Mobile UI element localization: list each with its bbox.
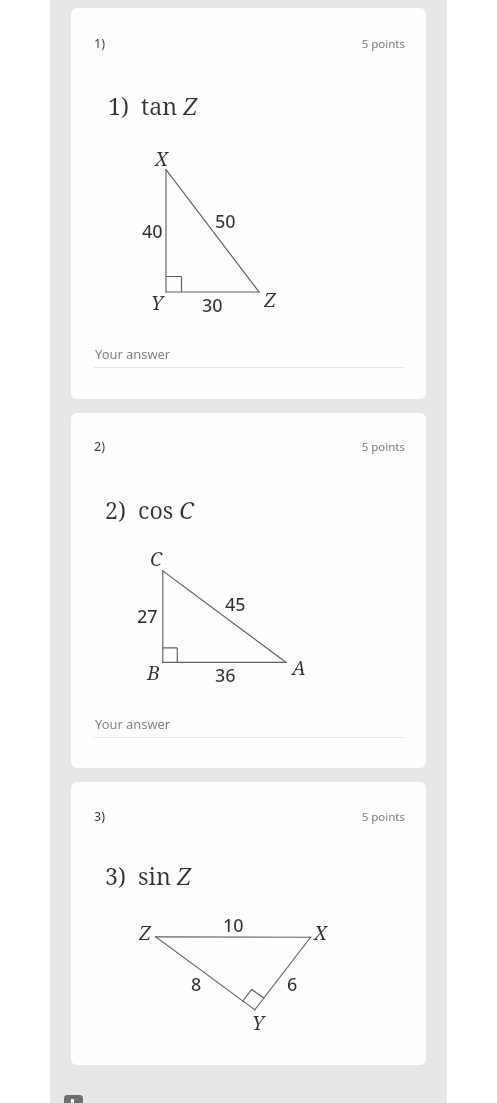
staticText: 30 [202,293,223,318]
staticText: X [314,919,327,946]
staticText: Z [139,919,151,946]
staticText: 27 [137,604,158,629]
staticText: A [292,654,306,681]
staticText: 2) [94,438,106,455]
staticText: 2) cos C [105,494,194,526]
staticText: Your answer [95,345,171,363]
button[interactable]: Toolbar button [64,1095,83,1103]
staticText: 6 [287,972,298,997]
staticText: 50 [215,209,236,234]
staticText: 5 points [333,809,405,825]
staticText: 10 [223,913,244,938]
staticText: Z [264,286,276,313]
button[interactable]: Your answer [94,338,404,369]
staticText: 5 points [333,439,405,455]
staticText: 8 [191,972,202,997]
staticText: Y [151,289,164,316]
staticText: 3) [94,808,106,825]
button[interactable]: 3) [71,782,426,1065]
staticText: 45 [225,592,246,617]
staticText: 1) tan Z [108,90,198,122]
staticText: 1) [94,35,106,52]
staticText: B [147,659,160,686]
staticText: 3) sin Z [105,860,191,892]
button[interactable]: 1) [71,8,426,399]
button[interactable]: 2) [71,413,426,768]
staticText: Your answer [95,715,171,733]
staticText: Y [252,1009,265,1036]
staticText: X [155,145,168,172]
staticText: 5 points [333,36,405,52]
staticText: C [150,545,163,572]
staticText: 40 [142,219,163,244]
staticText: 36 [215,663,236,688]
button[interactable]: Your answer [94,708,404,739]
